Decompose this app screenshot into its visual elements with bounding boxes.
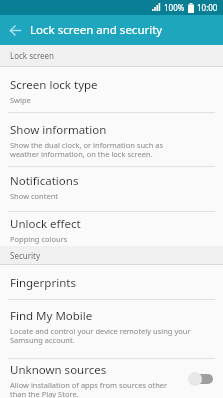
button[interactable]: Unlock effect [0, 212, 223, 246]
button[interactable]: Fingerprints [0, 265, 223, 299]
staticText: Allow installation of apps from sources … [10, 380, 168, 398]
button[interactable] [0, 15, 30, 45]
staticText: Screen lock type [10, 77, 98, 93]
button[interactable]: Screen lock type [0, 67, 223, 112]
button[interactable]: Find My Mobile [0, 300, 223, 358]
staticText: Lock screen and security [30, 22, 163, 38]
button[interactable]: Unknown sources [0, 359, 223, 398]
staticText: Unknown sources [10, 362, 107, 378]
staticText: Lock screen [10, 50, 55, 61]
staticText: Unlock effect [10, 216, 81, 232]
staticText: Find My Mobile [10, 308, 93, 324]
staticText: Popping colours [10, 234, 68, 244]
button[interactable]: Show information [0, 113, 223, 166]
staticText: 10:00 [197, 2, 218, 13]
button[interactable]: Notifications [0, 167, 223, 211]
staticText: Show information [10, 122, 107, 138]
staticText: Show the dual clock, or information such… [10, 140, 164, 159]
staticText: 100% [164, 2, 185, 13]
staticText: Show content [10, 191, 59, 201]
button[interactable] [188, 372, 213, 386]
staticText: Locate and control your device remotely … [10, 326, 191, 345]
staticText: Notifications [10, 173, 79, 189]
staticText: Security [10, 250, 41, 261]
staticText: Swipe [10, 95, 31, 105]
staticText: Fingerprints [10, 275, 76, 291]
